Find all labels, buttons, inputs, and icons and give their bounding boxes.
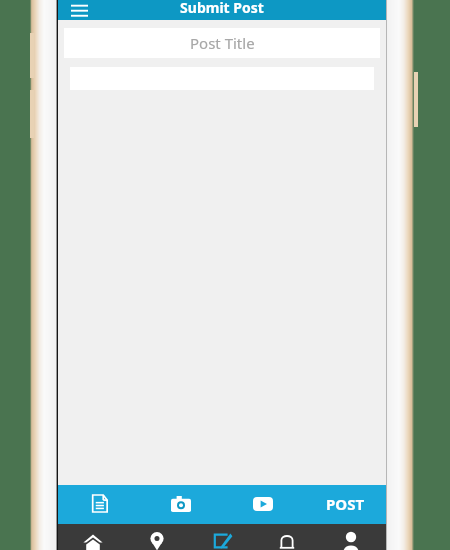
- button[interactable]: Post Title: [64, 28, 380, 58]
- button[interactable]: Places: [127, 524, 187, 550]
- button[interactable]: Profile: [321, 524, 381, 550]
- staticText: Submit Post: [180, 0, 264, 17]
- button[interactable]: Take photo: [140, 485, 222, 522]
- staticText: Post Title: [190, 33, 255, 53]
- button[interactable]: Open navigation menu: [64, 0, 94, 20]
- staticText: POST: [326, 494, 365, 514]
- button[interactable]: Home: [63, 524, 123, 550]
- button[interactable]: POST: [304, 485, 386, 522]
- button[interactable]: Compose post: [192, 524, 252, 550]
- button[interactable]: Notifications: [257, 524, 317, 550]
- button[interactable]: Attach video: [222, 485, 304, 522]
- button[interactable]: Attach document: [58, 485, 140, 522]
